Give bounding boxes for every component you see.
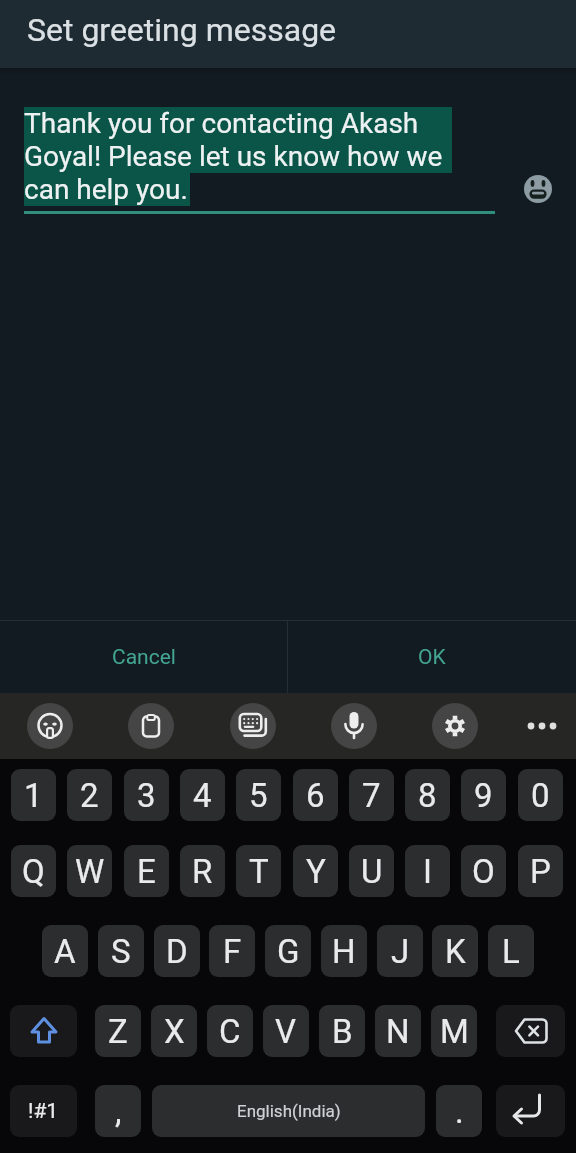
button[interactable]: 5 xyxy=(236,769,281,821)
staticText: Thank you for contacting Akash xyxy=(24,107,419,140)
button[interactable]: 0 xyxy=(518,769,563,821)
button[interactable]: !#1 xyxy=(10,1085,77,1137)
staticText: 3 xyxy=(137,776,156,815)
staticText: U xyxy=(361,852,383,891)
button[interactable] xyxy=(27,703,73,749)
staticText: !#1 xyxy=(28,1099,59,1124)
button[interactable] xyxy=(432,703,478,749)
button[interactable]: I xyxy=(405,845,450,897)
button[interactable]: J xyxy=(377,925,423,977)
staticText: OK xyxy=(418,645,446,670)
staticText: English(India) xyxy=(237,1101,341,1121)
button[interactable]: English(India) xyxy=(152,1085,425,1137)
staticText: C xyxy=(219,1012,241,1051)
button[interactable]: D xyxy=(154,925,200,977)
staticText: 1 xyxy=(24,776,43,815)
button[interactable] xyxy=(520,708,564,744)
button[interactable]: 8 xyxy=(405,769,450,821)
button[interactable]: 6 xyxy=(293,769,338,821)
staticText: S xyxy=(111,932,131,971)
staticText: W xyxy=(75,852,105,891)
button[interactable]: N xyxy=(375,1005,421,1057)
button[interactable]: R xyxy=(180,845,225,897)
staticText: P xyxy=(530,852,551,891)
button[interactable]: B xyxy=(319,1005,365,1057)
staticText: J xyxy=(391,932,410,971)
staticText: , xyxy=(115,1092,122,1131)
staticText: E xyxy=(137,852,156,891)
staticText: I xyxy=(423,852,432,891)
button[interactable]: W xyxy=(67,845,112,897)
button[interactable]: O xyxy=(461,845,506,897)
button[interactable]: P xyxy=(518,845,563,897)
staticText: 6 xyxy=(306,776,325,815)
button[interactable]: A xyxy=(42,925,88,977)
staticText: Cancel xyxy=(112,645,176,670)
button[interactable]: Y xyxy=(293,845,338,897)
button[interactable]: M xyxy=(431,1005,477,1057)
staticText: 4 xyxy=(193,776,212,815)
staticText: 0 xyxy=(531,776,550,815)
button[interactable]: G xyxy=(265,925,311,977)
button[interactable]: X xyxy=(151,1005,197,1057)
button[interactable]: 7 xyxy=(349,769,394,821)
button[interactable] xyxy=(10,1005,77,1057)
button[interactable]: Z xyxy=(95,1005,141,1057)
staticText: K xyxy=(445,932,466,971)
staticText: Set greeting message xyxy=(27,11,337,49)
staticText: V xyxy=(275,1012,297,1051)
button[interactable]: L xyxy=(488,925,534,977)
staticText: R xyxy=(192,852,213,891)
button[interactable]: 9 xyxy=(461,769,506,821)
button[interactable]: 3 xyxy=(124,769,169,821)
staticText: 5 xyxy=(249,776,268,815)
staticText: 8 xyxy=(418,776,437,815)
staticText: L xyxy=(502,932,520,971)
button[interactable] xyxy=(524,175,552,203)
staticText: Y xyxy=(306,852,326,891)
staticText: H xyxy=(332,932,356,971)
staticText: 2 xyxy=(80,776,99,815)
staticText: Z xyxy=(108,1012,128,1051)
button[interactable]: OK xyxy=(288,621,576,693)
button[interactable] xyxy=(128,703,174,749)
button[interactable]: 1 xyxy=(11,769,56,821)
button[interactable]: V xyxy=(263,1005,309,1057)
staticText: M xyxy=(440,1012,469,1051)
button[interactable]: C xyxy=(207,1005,253,1057)
button[interactable] xyxy=(230,703,276,749)
button[interactable]: E xyxy=(124,845,169,897)
button[interactable]: T xyxy=(236,845,281,897)
button[interactable]: F xyxy=(209,925,255,977)
staticText: X xyxy=(164,1012,185,1051)
button[interactable]: 4 xyxy=(180,769,225,821)
staticText: D xyxy=(166,932,188,971)
staticText: B xyxy=(332,1012,353,1051)
staticText: 9 xyxy=(474,776,493,815)
staticText: N xyxy=(386,1012,410,1051)
staticText: A xyxy=(54,932,76,971)
staticText: O xyxy=(472,852,495,891)
button[interactable]: S xyxy=(98,925,144,977)
button[interactable] xyxy=(496,1085,565,1137)
button[interactable]: , xyxy=(95,1085,141,1137)
button[interactable]: . xyxy=(436,1085,482,1137)
staticText: . xyxy=(455,1092,464,1131)
button[interactable]: H xyxy=(321,925,367,977)
button[interactable] xyxy=(331,703,377,749)
button[interactable]: Q xyxy=(11,845,56,897)
button[interactable]: K xyxy=(432,925,478,977)
staticText: F xyxy=(223,932,242,971)
button[interactable]: Cancel xyxy=(0,621,287,693)
button[interactable]: 2 xyxy=(67,769,112,821)
staticText: T xyxy=(249,852,269,891)
staticText: Q xyxy=(22,852,45,891)
staticText: G xyxy=(277,932,300,971)
staticText: 7 xyxy=(362,776,381,815)
button[interactable] xyxy=(496,1005,565,1057)
button[interactable]: U xyxy=(349,845,394,897)
staticText: Goyal! Please let us know how we xyxy=(24,140,443,173)
staticText: can help you. xyxy=(24,173,188,206)
